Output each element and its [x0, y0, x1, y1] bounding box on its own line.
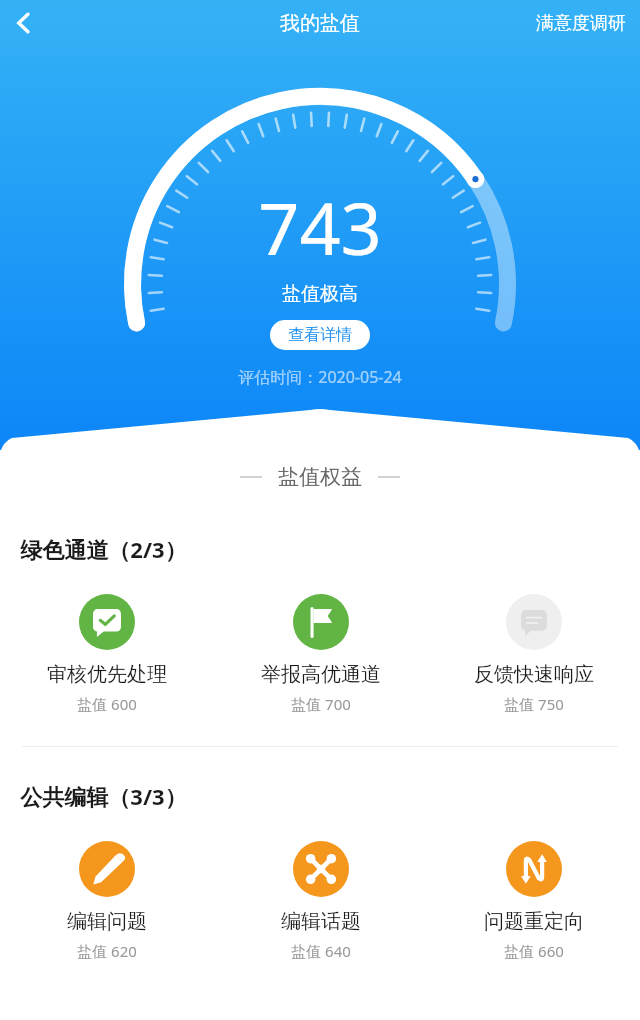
staticText: 问题重定向: [484, 909, 584, 934]
staticText: 盐值 700: [291, 694, 351, 714]
staticText: 我的盐值: [280, 11, 360, 36]
staticText: 满意度调研: [536, 12, 626, 35]
button[interactable]: 编辑问题: [0, 841, 214, 961]
button[interactable]: 问题重定向: [427, 841, 640, 961]
button[interactable]: 举报高优通道: [214, 594, 427, 714]
staticText: 盐值 600: [77, 694, 137, 714]
staticText: 编辑问题: [67, 909, 147, 934]
staticText: 743: [258, 178, 382, 276]
staticText: 公共编辑（3/3）: [20, 781, 187, 811]
staticText: 审核优先处理: [47, 662, 167, 687]
staticText: 盐值 660: [504, 941, 564, 961]
button[interactable]: 满意度调研: [522, 6, 640, 41]
staticText: 盐值极高: [282, 282, 358, 306]
staticText: 评估时间：2020-05-24: [238, 366, 402, 388]
staticText: 查看详情: [288, 325, 352, 345]
staticText: 反馈快速响应: [474, 662, 594, 687]
button[interactable]: 审核优先处理: [0, 594, 214, 714]
staticText: 盐值权益: [278, 464, 362, 490]
staticText: 盐值 640: [291, 941, 351, 961]
button[interactable]: 查看详情: [270, 320, 370, 350]
staticText: 盐值 750: [504, 694, 564, 714]
staticText: 绿色通道（2/3）: [20, 534, 187, 564]
staticText: 编辑话题: [281, 909, 361, 934]
staticText: 盐值 620: [77, 941, 137, 961]
staticText: 举报高优通道: [261, 662, 381, 687]
button[interactable]: 编辑话题: [214, 841, 427, 961]
button[interactable]: 返回: [0, 0, 48, 46]
button[interactable]: 反馈快速响应: [427, 594, 640, 714]
